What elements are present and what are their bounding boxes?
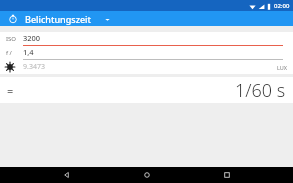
button[interactable]: Belichtungszeit: [25, 13, 111, 25]
staticText: Belichtungszeit: [25, 13, 91, 25]
button[interactable]: Home: [139, 167, 155, 183]
button[interactable]: =: [0, 77, 293, 103]
staticText: 1,4: [23, 47, 34, 57]
staticText: ISO: [6, 35, 17, 43]
button[interactable]: Exposure timer: [6, 12, 19, 25]
staticText: 02:00: [274, 2, 290, 10]
staticText: LUX: [277, 64, 288, 71]
button[interactable]: f /: [0, 46, 293, 60]
button[interactable]: Recents: [219, 167, 235, 183]
staticText: 3200: [23, 33, 41, 43]
staticText: 1/60 s: [235, 78, 286, 103]
staticText: f /: [6, 49, 12, 57]
button[interactable]: Light meter: [0, 60, 293, 74]
button[interactable]: ISO: [0, 32, 293, 46]
button[interactable]: Back: [59, 167, 75, 183]
staticText: =: [7, 83, 14, 98]
staticText: 9.3473: [23, 62, 45, 72]
